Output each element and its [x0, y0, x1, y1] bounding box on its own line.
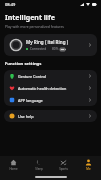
button[interactable]: Me [76, 156, 101, 174]
other: Me [85, 159, 92, 166]
button[interactable]: Home [0, 156, 26, 174]
staticText: Gesture Control [18, 74, 88, 79]
staticText: Play with more personalized features [5, 24, 64, 29]
button[interactable]: Sleep [26, 156, 51, 174]
staticText: Sports [59, 167, 68, 171]
staticText: Connected [30, 47, 47, 51]
staticText: Home [9, 167, 18, 171]
staticText: My Ring ( itel Ring ) [26, 39, 69, 45]
button[interactable]: My Ring ( itel Ring ) [4, 34, 97, 56]
other: Open [88, 113, 92, 119]
staticText: Intelligent life [5, 13, 55, 23]
staticText: 08:49 [5, 2, 16, 7]
button[interactable]: APP language [4, 94, 97, 106]
staticText: 80% [52, 47, 59, 51]
button[interactable]: Use help [4, 110, 97, 122]
other: Sleep [35, 159, 42, 166]
other: Home [10, 159, 17, 166]
other: Open [88, 42, 92, 48]
other: Sports [60, 159, 67, 166]
staticText: Sleep [35, 167, 43, 171]
staticText: APP language [18, 98, 88, 103]
button[interactable]: Automatic health detection [4, 82, 97, 94]
other: Open [88, 73, 92, 79]
button[interactable]: Gesture Control [4, 70, 97, 82]
other: Open [88, 97, 92, 103]
other: Open [88, 85, 92, 91]
staticText: Function settings [5, 61, 42, 67]
staticText: Use help [18, 114, 88, 119]
staticText: Me [86, 167, 91, 171]
button[interactable]: Sports [51, 156, 76, 174]
staticText: Automatic health detection [18, 86, 88, 91]
